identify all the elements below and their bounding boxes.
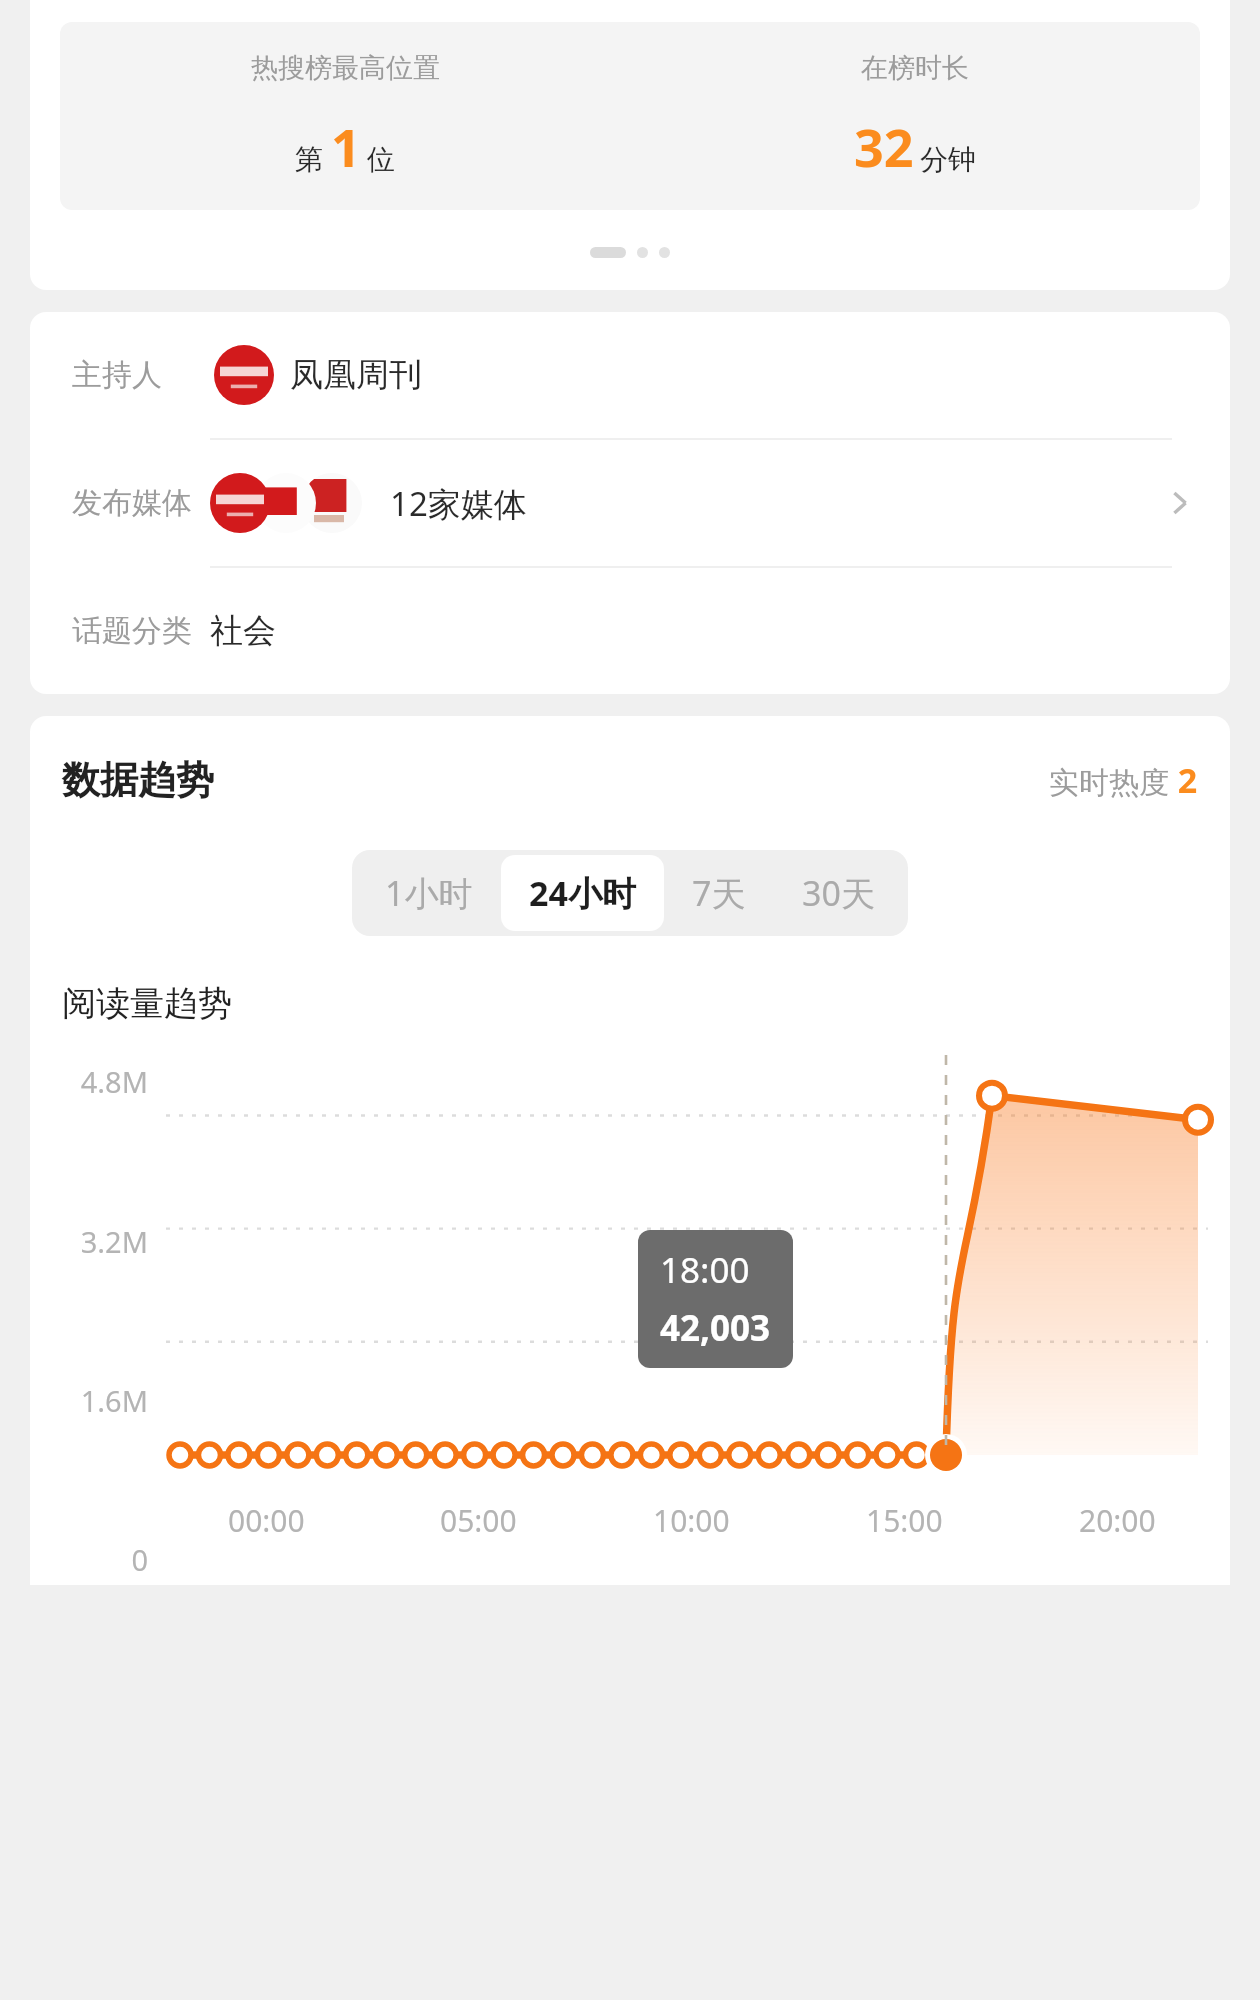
button[interactable]: 发布媒体 bbox=[30, 440, 1230, 566]
button[interactable]: 主持人 bbox=[30, 312, 1230, 438]
other: More media bbox=[1166, 489, 1194, 517]
staticText: 10:00 bbox=[653, 1500, 730, 1541]
staticText: 1 bbox=[331, 111, 361, 182]
staticText: 24小时 bbox=[529, 870, 636, 916]
button[interactable]: 7天 bbox=[664, 855, 774, 931]
button[interactable]: 30天 bbox=[774, 855, 903, 931]
staticText: 在榜时长 bbox=[861, 51, 969, 85]
staticText: 20:00 bbox=[1079, 1500, 1156, 1541]
staticText: 热搜榜最高位置 bbox=[251, 51, 440, 85]
button[interactable]: 话题分类 bbox=[30, 568, 1230, 694]
staticText: 18:00 bbox=[660, 1246, 750, 1294]
staticText: 分钟 bbox=[920, 142, 976, 177]
staticText: 0 bbox=[30, 1540, 148, 1579]
staticText: 7天 bbox=[692, 870, 746, 916]
staticText: 实时热度 2 bbox=[1049, 757, 1198, 803]
staticText: 社会 bbox=[210, 610, 276, 652]
staticText: 发布媒体 bbox=[72, 484, 192, 522]
staticText: 1.6M bbox=[30, 1381, 148, 1420]
staticText: 数据趋势 bbox=[62, 756, 214, 804]
staticText: 第 bbox=[295, 142, 323, 177]
staticText: 3.2M bbox=[30, 1222, 148, 1261]
staticText: 30天 bbox=[802, 870, 875, 916]
staticText: 05:00 bbox=[440, 1500, 517, 1541]
staticText: 32 bbox=[854, 111, 914, 182]
button[interactable]: 24小时 bbox=[501, 855, 664, 931]
staticText: 1小时 bbox=[385, 870, 473, 916]
button[interactable]: 1小时 bbox=[357, 855, 501, 931]
staticText: 主持人 bbox=[72, 356, 162, 394]
staticText: 凤凰周刊 bbox=[290, 354, 422, 396]
staticText: 阅读量趋势 bbox=[62, 982, 232, 1025]
staticText: 12家媒体 bbox=[390, 481, 527, 526]
staticText: 位 bbox=[367, 142, 395, 177]
staticText: 42,003 bbox=[660, 1304, 771, 1352]
staticText: 15:00 bbox=[866, 1500, 943, 1541]
staticText: 话题分类 bbox=[72, 612, 192, 650]
staticText: 4.8M bbox=[30, 1062, 148, 1101]
staticText: 00:00 bbox=[228, 1500, 305, 1541]
